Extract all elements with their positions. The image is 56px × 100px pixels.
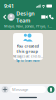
staticText: 9:41 xyxy=(4,2,14,10)
staticText: Design Team xyxy=(16,10,34,24)
button[interactable]: Record voice message xyxy=(47,86,54,93)
staticText: You created this group xyxy=(16,43,39,54)
button[interactable]: Design Team xyxy=(7,10,34,24)
button[interactable]: Voice call xyxy=(48,13,54,21)
button[interactable]: Back xyxy=(1,12,7,21)
button[interactable]: Tap to learn more xyxy=(16,58,40,63)
button[interactable]: Attach xyxy=(1,86,8,93)
staticText: Messages are end-to-end encrypted. xyxy=(13,55,43,58)
button[interactable]: Video call xyxy=(41,13,48,21)
button[interactable]: Message xyxy=(10,86,46,93)
staticText: Message xyxy=(12,87,28,92)
staticText: Tap to learn more xyxy=(16,59,40,63)
staticText: Maya, Ravi, Jonas, Priya, Tom, you xyxy=(4,23,52,29)
